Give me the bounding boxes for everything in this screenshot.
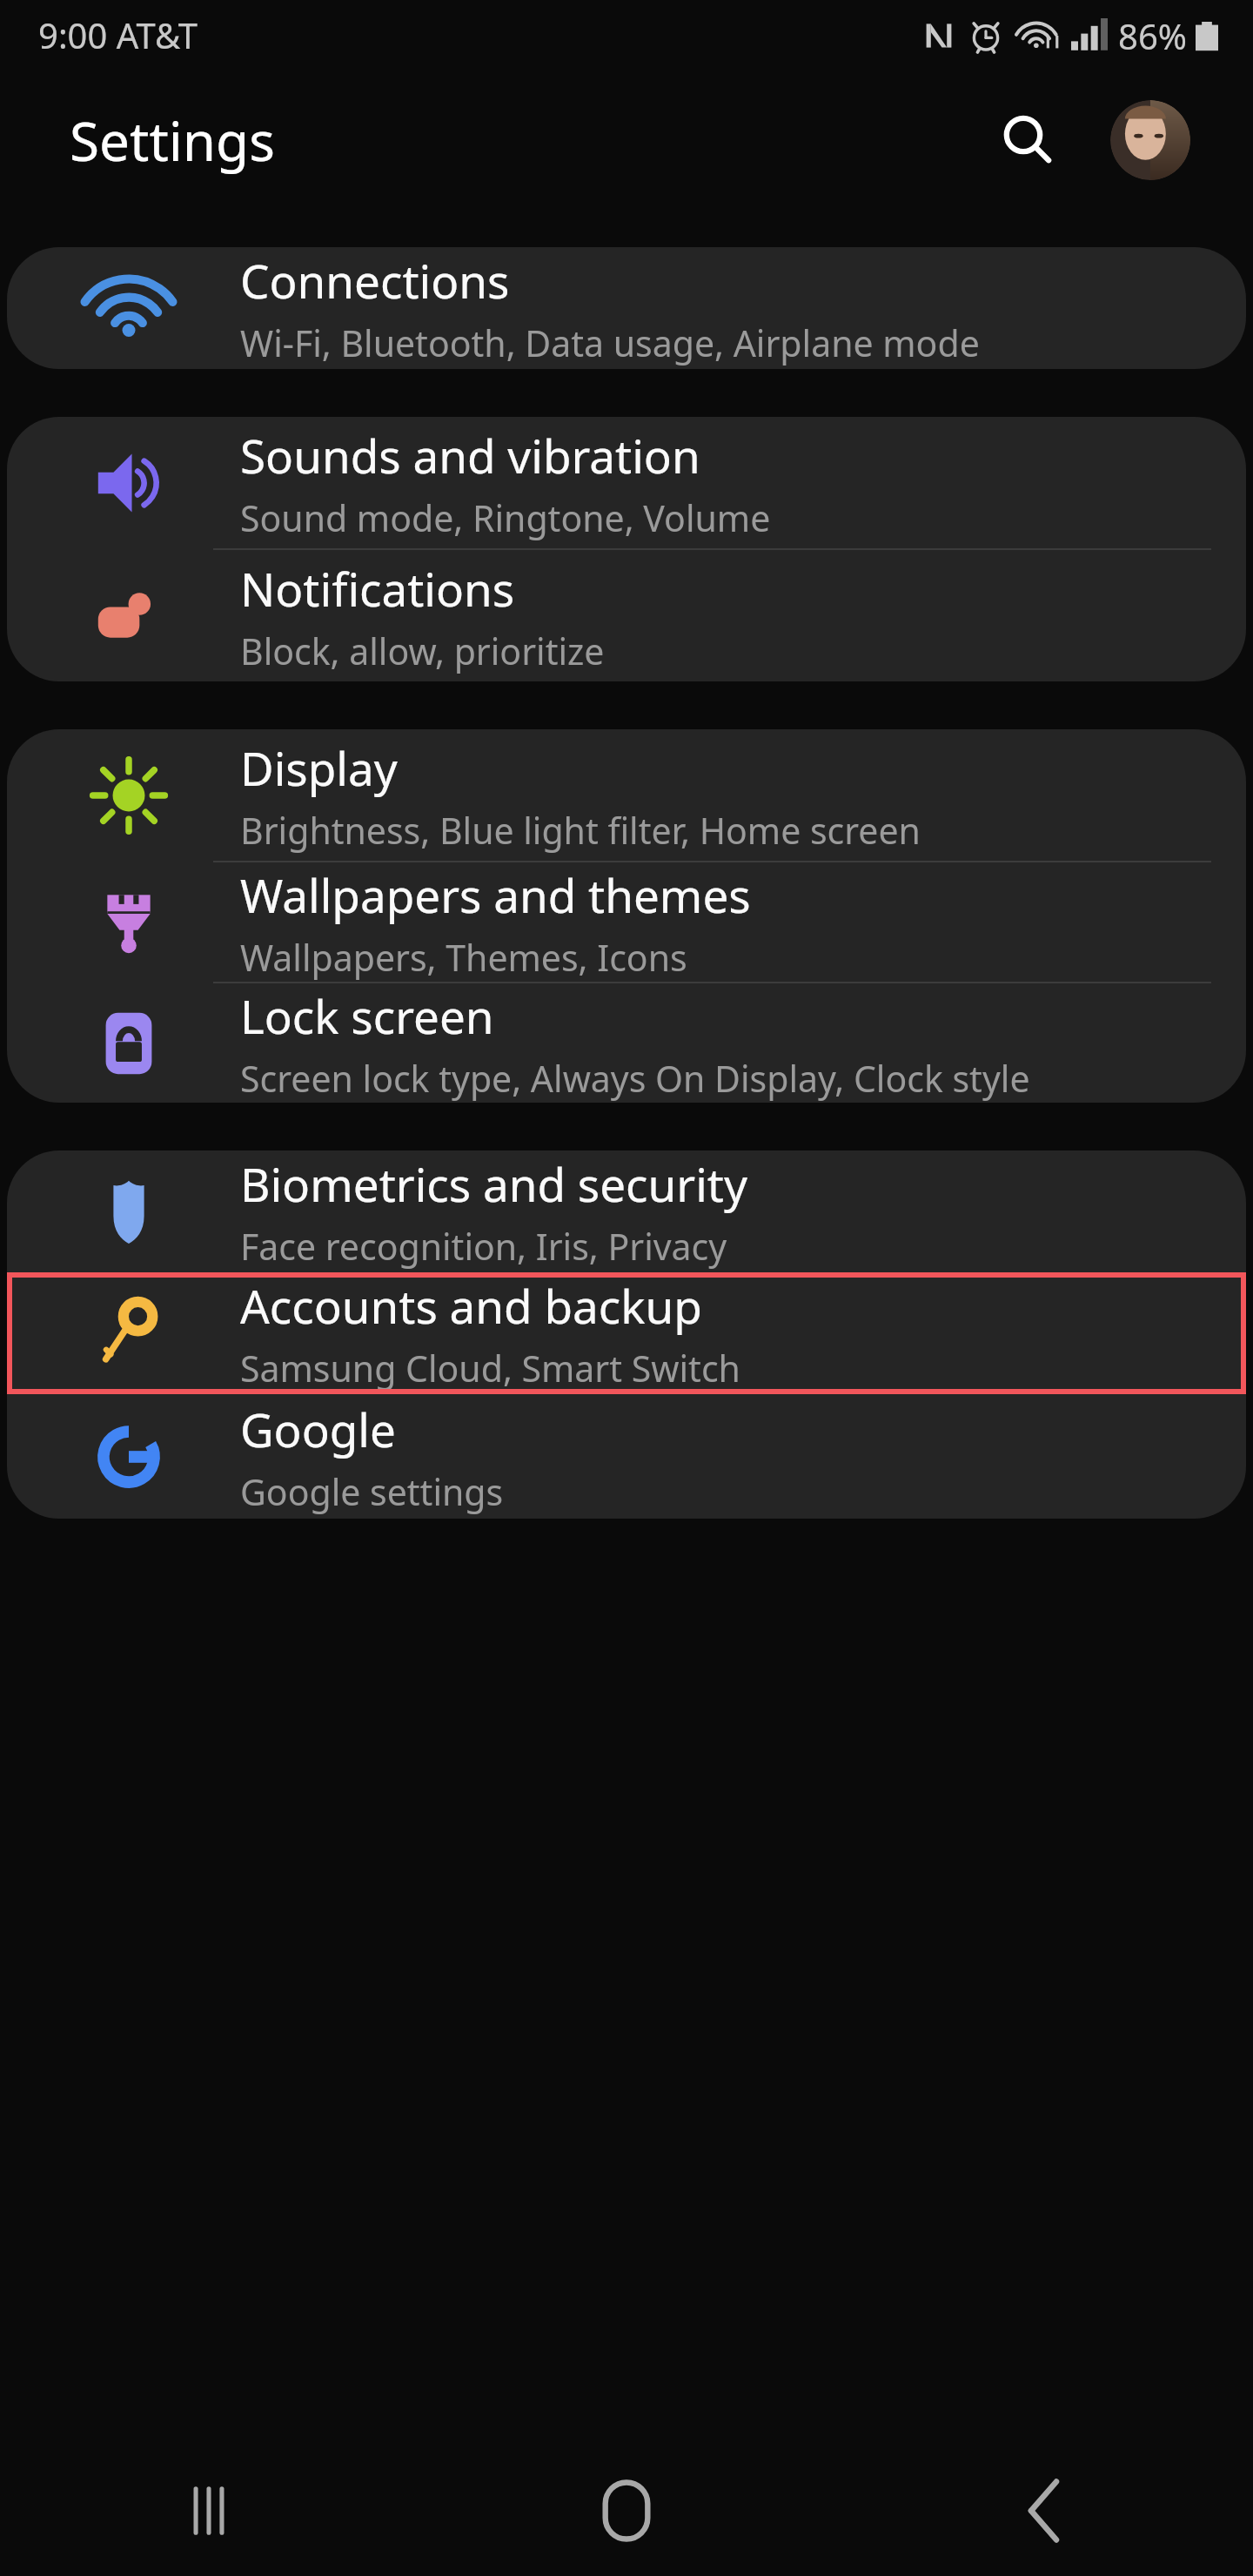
staticText: Settings bbox=[70, 104, 275, 177]
staticText: Biometrics and security bbox=[240, 1152, 747, 1215]
staticText: Wi-Fi, Bluetooth, Data usage, Airplane m… bbox=[240, 319, 980, 367]
staticText: Lock screen bbox=[240, 984, 494, 1047]
button[interactable]: Google bbox=[7, 1394, 1246, 1519]
button[interactable]: Accounts and backup bbox=[7, 1272, 1246, 1394]
button[interactable]: Home bbox=[539, 2445, 714, 2576]
button[interactable]: Connections bbox=[7, 247, 1246, 369]
button[interactable]: Biometrics and security bbox=[7, 1150, 1246, 1272]
staticText: Display bbox=[240, 736, 398, 799]
button[interactable]: Account profile bbox=[1110, 100, 1190, 180]
button[interactable]: Lock screen bbox=[7, 983, 1246, 1103]
staticText: Block, allow, prioritize bbox=[240, 627, 605, 675]
button[interactable]: Recent apps bbox=[122, 2445, 296, 2576]
staticText: Wallpapers, Themes, Icons bbox=[240, 933, 687, 982]
staticText: 86% bbox=[1118, 12, 1187, 59]
staticText: Sound mode, Ringtone, Volume bbox=[240, 493, 771, 542]
staticText: Samsung Cloud, Smart Switch bbox=[240, 1344, 740, 1392]
staticText: Google bbox=[240, 1398, 396, 1460]
button[interactable]: Sounds and vibration bbox=[7, 417, 1246, 548]
staticText: Connections bbox=[240, 249, 510, 312]
staticText: Accounts and backup bbox=[240, 1274, 702, 1337]
button[interactable]: Back bbox=[957, 2445, 1131, 2576]
button[interactable]: Wallpapers and themes bbox=[7, 862, 1246, 982]
staticText: Face recognition, Iris, Privacy bbox=[240, 1222, 727, 1271]
staticText: Notifications bbox=[240, 557, 515, 620]
button[interactable]: Display bbox=[7, 729, 1246, 861]
staticText: Sounds and vibration bbox=[240, 424, 700, 486]
staticText: Brightness, Blue light filter, Home scre… bbox=[240, 806, 921, 855]
button[interactable]: Search bbox=[987, 98, 1070, 182]
button[interactable]: Notifications bbox=[7, 550, 1246, 681]
staticText: Screen lock type, Always On Display, Clo… bbox=[240, 1054, 1030, 1103]
staticText: Wallpapers and themes bbox=[240, 863, 751, 926]
staticText: Google settings bbox=[240, 1467, 504, 1516]
staticText: 9:00 AT&T bbox=[38, 11, 198, 58]
